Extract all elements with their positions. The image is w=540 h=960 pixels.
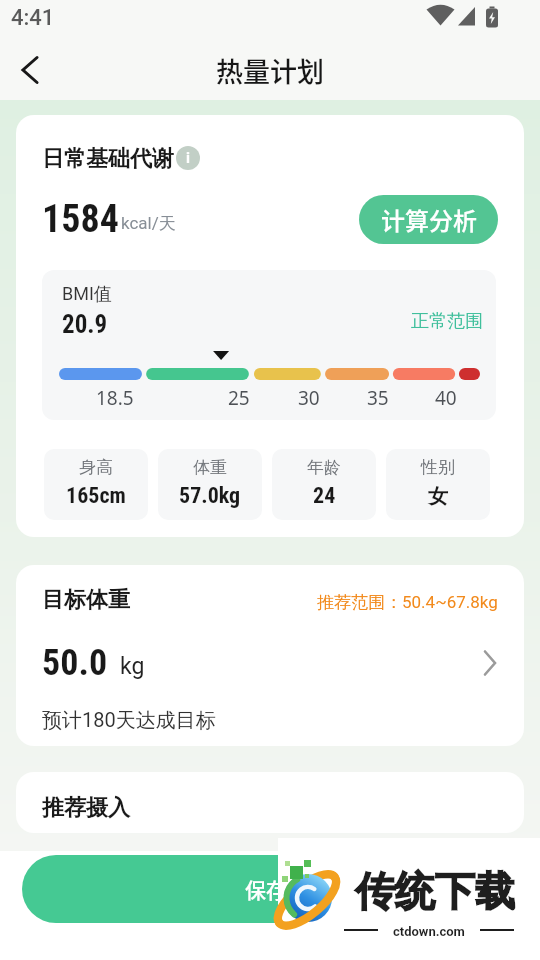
button[interactable]	[8, 48, 52, 92]
staticText: BMI值	[62, 283, 112, 306]
staticText: 日常基础代谢	[42, 145, 174, 173]
staticText: 165cm	[66, 483, 126, 509]
staticText: ctdown.com	[393, 924, 465, 939]
staticText: 身高	[79, 457, 113, 478]
staticText: 女	[428, 484, 448, 509]
staticText: 25	[228, 385, 250, 411]
staticText: kcal/天	[121, 213, 176, 234]
staticText: 正常范围	[411, 310, 483, 333]
staticText: i	[186, 149, 190, 167]
staticText: 计算分析	[381, 202, 477, 237]
staticText: 1584	[42, 197, 119, 242]
staticText: 目标体重	[42, 586, 130, 614]
staticText: 热量计划	[216, 51, 324, 90]
staticText: 40	[435, 385, 457, 411]
staticText: 年龄	[307, 457, 341, 478]
staticText: 35	[367, 385, 389, 411]
staticText: 性别	[421, 457, 455, 478]
staticText: kg	[120, 653, 145, 680]
staticText: 4:41	[11, 5, 55, 31]
staticText: 24	[313, 483, 336, 509]
staticText: 保存	[245, 874, 287, 904]
staticText: 推荐范围：50.4~67.8kg	[317, 592, 498, 613]
staticText: 50.0	[42, 642, 108, 684]
staticText: 30	[298, 385, 320, 411]
staticText: 57.0kg	[179, 483, 241, 509]
staticText: 预计180天达成目标	[42, 708, 216, 733]
staticText: 传统下载	[355, 866, 515, 916]
button[interactable]: 保存	[22, 855, 510, 923]
button[interactable]: 计算分析	[359, 195, 498, 244]
button[interactable]: 目标体重	[16, 565, 524, 746]
staticText: 推荐摄入	[42, 794, 130, 822]
staticText: 20.9	[62, 310, 108, 339]
staticText: 体重	[193, 457, 227, 478]
staticText: 18.5	[96, 385, 134, 411]
